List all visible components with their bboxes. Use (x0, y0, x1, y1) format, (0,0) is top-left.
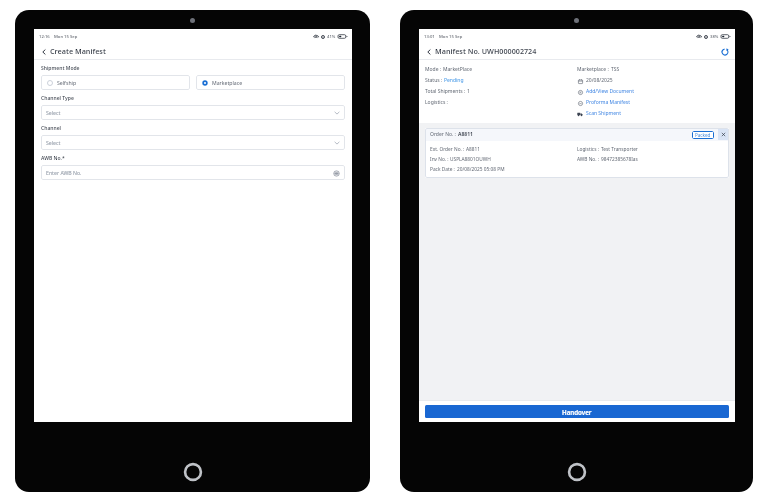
staticText: Selfship (57, 79, 77, 86)
staticText: Packed (695, 132, 711, 138)
staticText: AWB No. : (577, 156, 601, 163)
staticText: A8811 (466, 146, 481, 153)
button[interactable]: Refresh (719, 46, 730, 57)
staticText: USPLA8801OUWH (450, 156, 491, 163)
button[interactable]: Scan barcode (332, 169, 340, 177)
staticText: Test Transporter (601, 146, 638, 153)
staticText: Mode : (425, 66, 443, 73)
button[interactable]: Select (41, 105, 345, 120)
staticText: 1 (467, 88, 470, 95)
staticText: 38% (710, 34, 719, 40)
staticText: 20/08/2025 05:08 PM (457, 166, 505, 173)
staticText: Proforma Manifest (586, 99, 631, 106)
staticText: 41% (327, 34, 336, 40)
button[interactable]: Select (41, 135, 345, 150)
button[interactable]: Order No. : (425, 128, 729, 178)
button[interactable]: Handover (425, 405, 729, 418)
staticText: 13:01 (424, 34, 435, 40)
button[interactable]: Add/View Document (577, 86, 729, 97)
button[interactable]: Back (39, 47, 48, 56)
staticText: Total Shipments : (425, 88, 467, 95)
staticText: 98472385678Ias (601, 156, 638, 163)
staticText: Pack Date : (430, 166, 457, 173)
staticText: Logistics : (577, 146, 601, 153)
staticText: Inv No. : (430, 156, 450, 163)
staticText: TSS (611, 66, 620, 73)
staticText: Create Manifest (50, 46, 106, 56)
button[interactable]: Back (424, 47, 433, 56)
staticText: Channel (41, 125, 62, 132)
staticText: Handover (562, 408, 592, 416)
staticText: Order No. : (430, 131, 458, 138)
staticText: MarketPlace (443, 66, 473, 73)
button[interactable]: Proforma Manifest (577, 97, 729, 108)
staticText: Mon 15 Sep (439, 34, 463, 40)
staticText: Marketplace (212, 79, 243, 86)
button[interactable]: Marketplace (196, 75, 345, 90)
button[interactable]: Enter AWB No. (41, 165, 345, 180)
staticText: Ext. Order No. : (430, 146, 466, 153)
staticText: Marketplace : (577, 66, 611, 73)
staticText: AWB No.* (41, 155, 65, 162)
staticText: Manifest No. UWH000002724 (435, 46, 537, 56)
staticText: Scan Shipment (586, 110, 621, 117)
button[interactable]: Remove order (718, 129, 729, 140)
staticText: A8811 (458, 131, 473, 138)
staticText: Shipment Mode (41, 65, 80, 72)
staticText: Pending (444, 77, 464, 84)
staticText: 20/08/2025 (586, 77, 613, 84)
staticText: Enter AWB No. (46, 169, 82, 176)
staticText: Logistics : (425, 99, 450, 106)
staticText: Mon 15 Sep (54, 34, 78, 40)
button[interactable]: Packed (692, 131, 714, 139)
staticText: 12:16 (39, 34, 50, 40)
staticText: Channel Type (41, 95, 74, 102)
staticText: Select (46, 139, 61, 146)
staticText: Add/View Document (586, 88, 635, 95)
staticText: Status : (425, 77, 444, 84)
button[interactable]: Selfship (41, 75, 190, 90)
staticText: Select (46, 109, 61, 116)
button[interactable]: Scan Shipment (577, 108, 729, 119)
